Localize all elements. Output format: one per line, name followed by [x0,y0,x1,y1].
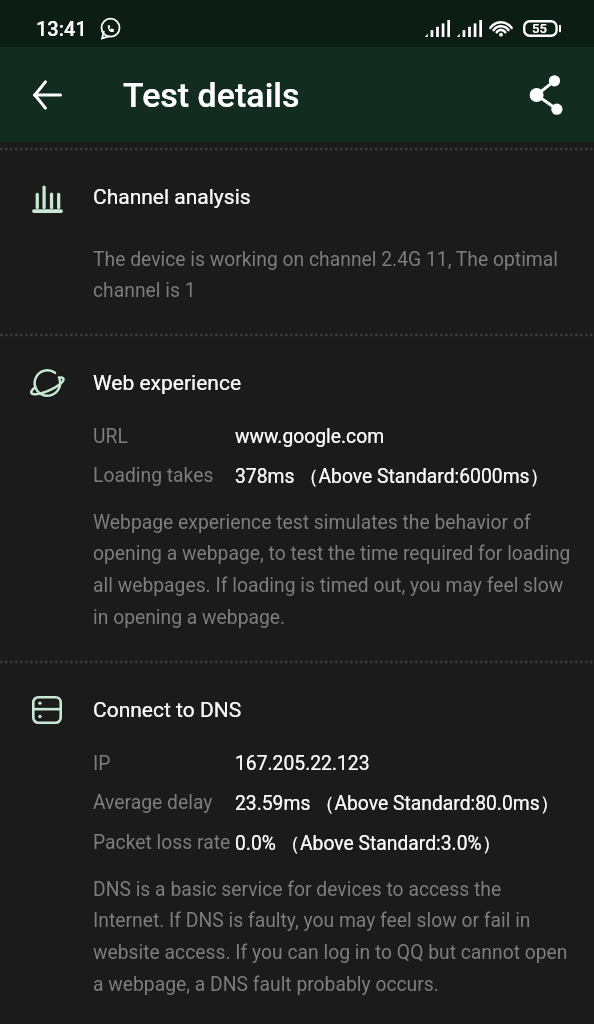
staticText: 23.59ms （Above Standard:80.0ms） [235,791,559,815]
staticText: DNS is a basic service for devices to ac… [93,878,571,996]
staticText: 55 [532,21,547,36]
button[interactable]: Share [518,66,575,123]
staticText: 0.0% （Above Standard:3.0%） [235,831,501,855]
staticText: URL [93,425,128,448]
staticText: Test details [123,75,300,115]
button[interactable]: Back [19,66,76,123]
staticText: www.google.com [235,425,385,448]
staticText: Connect to DNS [93,698,242,723]
staticText: Packet loss rate [93,831,231,854]
staticText: 378ms （Above Standard:6000ms） [235,464,549,488]
staticText: 13:41 [36,17,87,40]
staticText: 167.205.22.123 [235,752,370,775]
staticText: Average delay [93,791,213,814]
staticText: IP [93,752,111,775]
staticText: Web experience [93,371,242,396]
staticText: The device is working on channel 2.4G 11… [93,248,571,302]
staticText: Channel analysis [93,185,251,210]
staticText: Loading takes [93,464,214,487]
staticText: Webpage experience test simulates the be… [93,511,571,629]
